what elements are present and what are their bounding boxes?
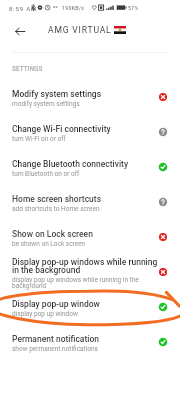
staticText: turn Wi-Fi on or off (12, 135, 66, 143)
button[interactable]: Change Bluetooth connectivity (0, 151, 180, 186)
staticText: 57% (128, 5, 139, 11)
staticText: Display pop-up window (12, 299, 100, 309)
button[interactable]: Display pop-up windows while running in … (0, 256, 180, 291)
staticText: add shortcuts to Home screen (12, 205, 100, 213)
staticText: Change Wi-Fi connectivity (12, 124, 111, 134)
staticText: Permanent notification (12, 334, 100, 344)
staticText: SETTINGS (12, 65, 43, 72)
button[interactable]: Display pop-up window (0, 291, 180, 326)
staticText: modify system settings (12, 100, 80, 108)
button[interactable]: Home screen shortcuts (0, 186, 180, 221)
button[interactable]: Show on Lock screen (0, 221, 180, 256)
staticText: Show on Lock screen (12, 229, 93, 239)
staticText: Display pop-up windows while running in … (12, 257, 158, 275)
staticText: show permanent notifications (12, 345, 98, 353)
staticText: Change Bluetooth connectivity (12, 159, 129, 169)
button[interactable]: Modify system settings (0, 81, 180, 116)
button[interactable]: Change Wi-Fi connectivity (0, 116, 180, 151)
staticText: 8:59 AM (9, 5, 38, 12)
staticText: turn Bluetooth on or off (12, 170, 80, 178)
button[interactable]: Back (11, 22, 29, 40)
staticText: 190KB/s (62, 5, 85, 11)
staticText: AMG VIRTUAL (48, 25, 112, 35)
staticText: display pop up window (12, 310, 78, 318)
staticText: display pop up windows while running in … (12, 276, 158, 290)
button[interactable]: Permanent notification (0, 326, 180, 361)
staticText: be shown on Lock screen (12, 240, 86, 248)
staticText: Home screen shortcuts (12, 194, 102, 204)
staticText: Modify system settings (12, 89, 102, 99)
